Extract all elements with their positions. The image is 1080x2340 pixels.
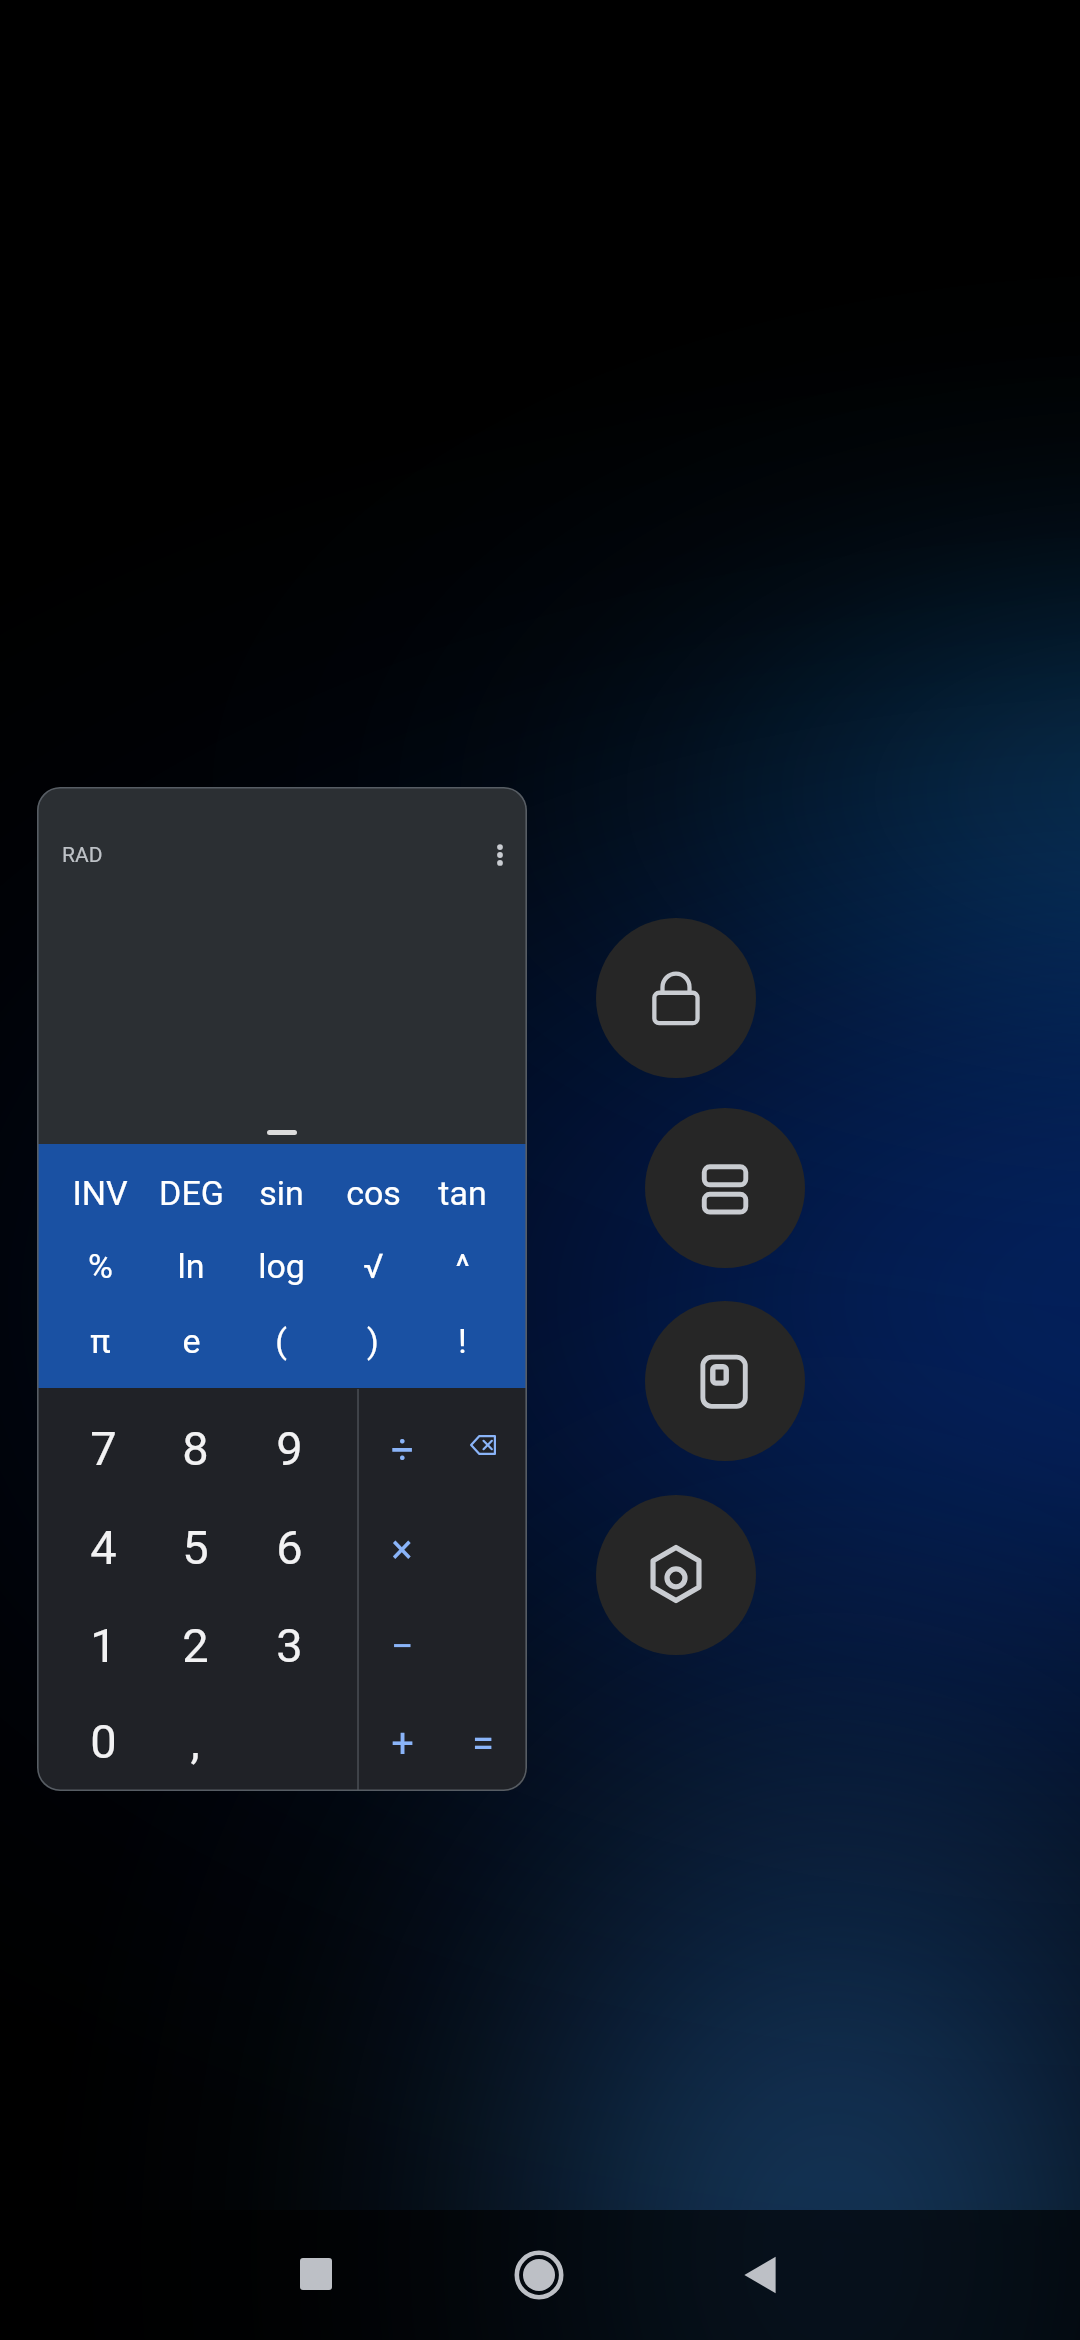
staticText: 1 xyxy=(90,1618,117,1673)
button[interactable]: π xyxy=(55,1305,145,1377)
staticText: % xyxy=(88,1246,113,1286)
button[interactable]: + xyxy=(357,1707,447,1779)
button[interactable]: − xyxy=(357,1610,447,1682)
button[interactable]: 2 xyxy=(150,1609,240,1681)
staticText: 2 xyxy=(182,1618,209,1673)
staticText: tan xyxy=(438,1173,487,1213)
staticText: DEG xyxy=(159,1173,224,1213)
staticText: cos xyxy=(346,1173,401,1213)
button[interactable]: ! xyxy=(417,1305,507,1377)
staticText: ln xyxy=(177,1246,205,1286)
staticText: 0 xyxy=(90,1714,117,1769)
staticText: 6 xyxy=(276,1520,303,1575)
button[interactable]: More options xyxy=(471,826,527,884)
staticText: ^ xyxy=(455,1246,470,1286)
button[interactable]: Picture in picture xyxy=(645,1301,805,1461)
button[interactable]: 5 xyxy=(150,1511,240,1583)
button[interactable]: × xyxy=(357,1513,447,1585)
staticText: √ xyxy=(363,1246,384,1286)
button[interactable]: ln xyxy=(146,1230,236,1302)
button[interactable]: ) xyxy=(328,1305,418,1377)
button[interactable]: cos xyxy=(328,1157,418,1229)
staticText: 9 xyxy=(276,1421,303,1476)
staticText: sin xyxy=(259,1173,304,1213)
staticText: 8 xyxy=(182,1421,209,1476)
button[interactable]: ÷ xyxy=(357,1413,447,1485)
staticText: e xyxy=(182,1321,201,1361)
button[interactable]: tan xyxy=(417,1157,507,1229)
staticText: 5 xyxy=(182,1520,209,1575)
staticText: ( xyxy=(275,1321,287,1361)
button[interactable]: = xyxy=(438,1707,527,1779)
button[interactable]: ( xyxy=(236,1305,326,1377)
staticText: = xyxy=(472,1720,494,1767)
button[interactable]: Settings xyxy=(596,1495,756,1655)
staticText: − xyxy=(391,1623,414,1670)
button[interactable]: 8 xyxy=(150,1412,240,1484)
staticText: ) xyxy=(367,1321,379,1361)
staticText: ! xyxy=(458,1321,467,1361)
button[interactable]: 4 xyxy=(58,1511,148,1583)
staticText: , xyxy=(190,1714,200,1769)
button[interactable]: Backspace xyxy=(454,1416,512,1474)
staticText: π xyxy=(90,1321,111,1361)
button[interactable]: ^ xyxy=(417,1230,507,1302)
button[interactable]: log xyxy=(236,1230,326,1302)
staticText: 4 xyxy=(90,1520,117,1575)
button[interactable]: Split screen xyxy=(645,1108,805,1268)
button[interactable]: 0 xyxy=(58,1705,148,1777)
staticText: × xyxy=(391,1526,413,1573)
button[interactable]: 1 xyxy=(58,1609,148,1681)
staticText: 3 xyxy=(276,1618,303,1673)
button[interactable]: Back xyxy=(720,2235,800,2315)
button[interactable]: % xyxy=(55,1230,145,1302)
button[interactable]: 3 xyxy=(244,1609,334,1681)
button[interactable]: Recent apps xyxy=(276,2234,356,2314)
staticText: 7 xyxy=(90,1421,117,1476)
button[interactable]: sin xyxy=(236,1157,326,1229)
staticText: ÷ xyxy=(391,1426,414,1473)
button[interactable]: √ xyxy=(328,1230,418,1302)
button[interactable]: 6 xyxy=(244,1511,334,1583)
button[interactable]: Lock xyxy=(596,918,756,1078)
button[interactable]: INV xyxy=(55,1157,145,1229)
staticText: INV xyxy=(72,1173,128,1213)
staticText: log xyxy=(258,1246,305,1286)
staticText: + xyxy=(391,1720,414,1767)
button[interactable]: 9 xyxy=(244,1412,334,1484)
button[interactable]: Home xyxy=(499,2235,579,2315)
button[interactable]: , xyxy=(150,1705,240,1777)
staticText: RAD xyxy=(62,843,103,868)
button[interactable]: DEG xyxy=(146,1157,236,1229)
button[interactable]: e xyxy=(146,1305,236,1377)
button[interactable]: 7 xyxy=(58,1412,148,1484)
